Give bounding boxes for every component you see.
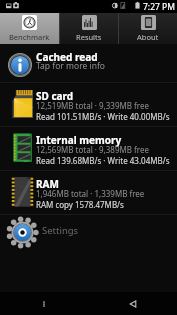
staticText: 1,946MB total · 1,339MB free <box>36 188 145 199</box>
staticText: 12,569MB total · 9,389MB free <box>36 144 149 155</box>
button[interactable]: Internal memory <box>0 127 177 170</box>
staticText: About <box>137 32 159 42</box>
staticText: 7:27 PM <box>143 1 175 13</box>
button[interactable]: More options <box>0 292 88 315</box>
button[interactable]: Results <box>59 13 118 44</box>
staticText: Read 139.68MB/s · Write 43.04MB/s <box>36 155 170 166</box>
button[interactable]: SD card <box>0 83 177 126</box>
staticText: Benchmark <box>9 32 50 42</box>
staticText: Tap for more info <box>36 60 105 72</box>
button[interactable]: Settings <box>0 215 177 251</box>
staticText: RAM copy 1578.47MB/s <box>36 199 124 210</box>
button[interactable]: RAM <box>0 171 177 214</box>
button[interactable]: About <box>118 13 177 44</box>
button[interactable]: Cached read <box>0 44 177 82</box>
staticText: Read 101.51MB/s · Write 40.00MB/s <box>36 111 170 122</box>
staticText: SD card <box>36 89 74 103</box>
staticText: Results <box>76 32 102 42</box>
staticText: Internal memory <box>36 133 122 147</box>
staticText: 12,519MB total · 9,339MB free <box>36 100 149 111</box>
staticText: Cached read <box>36 50 98 64</box>
staticText: RAM <box>36 177 59 191</box>
button[interactable]: Back <box>88 292 177 315</box>
staticText: Settings <box>42 224 79 237</box>
button[interactable]: Benchmark <box>0 13 59 44</box>
